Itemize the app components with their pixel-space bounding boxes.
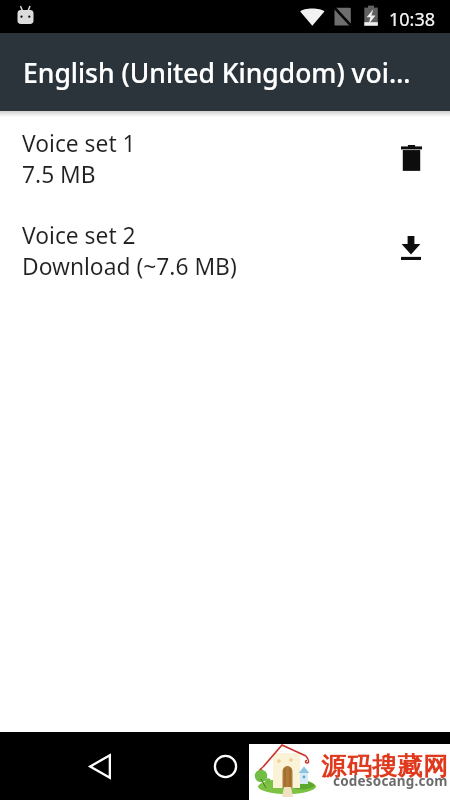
button[interactable]: Delete	[387, 134, 435, 182]
staticText: Voice set 2	[22, 220, 136, 251]
staticText: 7.5 MB	[22, 159, 96, 190]
staticText: 10:38	[389, 7, 436, 32]
staticText: English (United Kingdom) voi…	[23, 55, 411, 91]
button[interactable]: Back	[76, 742, 124, 790]
staticText: Voice set 1	[22, 128, 136, 159]
button[interactable]: Voice set 2	[0, 205, 450, 296]
button[interactable]: Home	[201, 742, 249, 790]
button[interactable]: Voice set 1	[0, 112, 450, 205]
button[interactable]: Download	[387, 226, 435, 274]
staticText: codesocang.com	[333, 772, 448, 790]
staticText: 源码搜藏网	[321, 751, 449, 782]
staticText: Download (~7.6 MB)	[22, 251, 237, 282]
